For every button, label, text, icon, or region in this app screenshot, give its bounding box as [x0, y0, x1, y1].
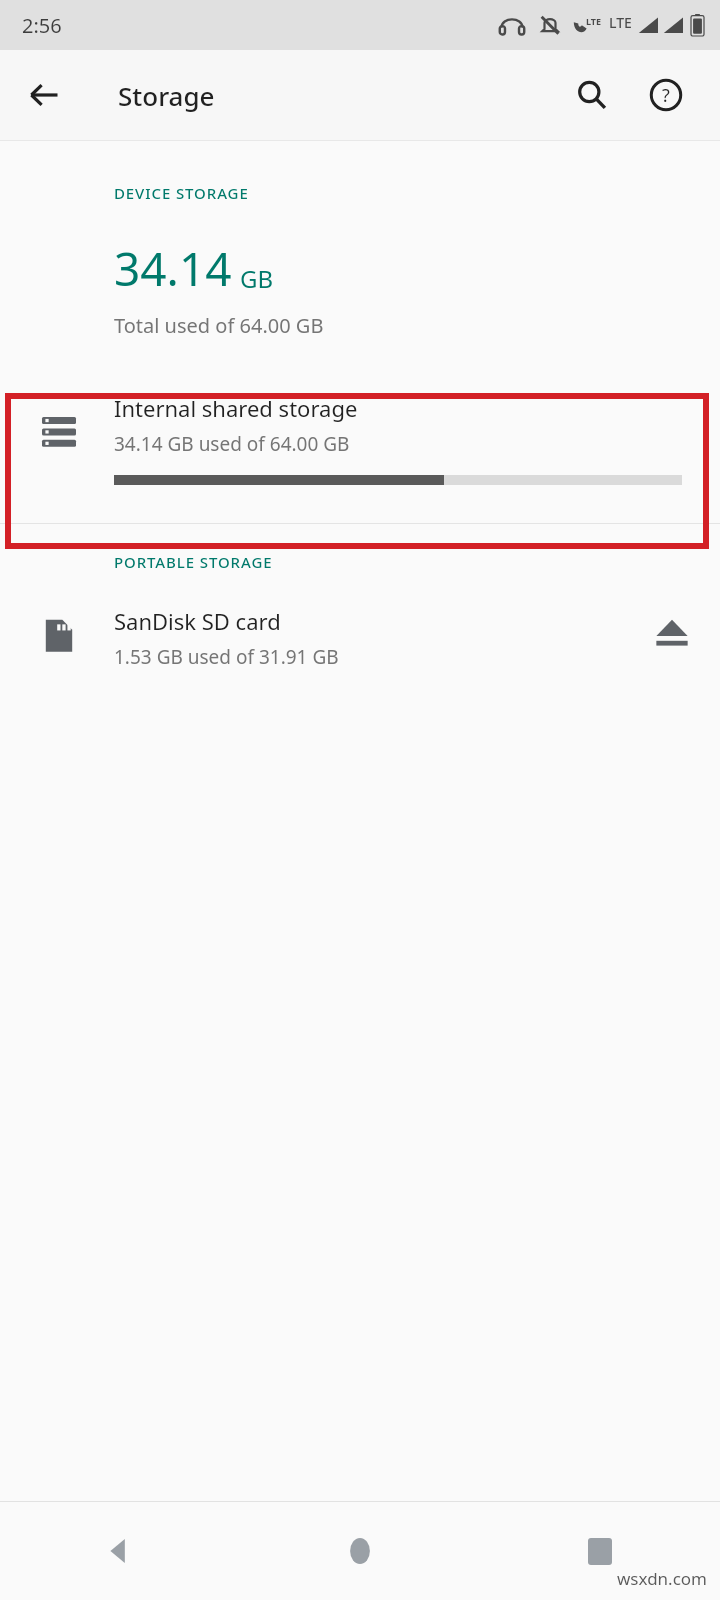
staticText: Internal shared storage [114, 393, 358, 423]
button[interactable]: Help [638, 67, 694, 123]
staticText: 34.14 GB used of 64.00 GB [114, 431, 350, 457]
staticText: GB [240, 262, 274, 295]
button[interactable]: Internal shared storage [0, 379, 720, 513]
staticText: SanDisk SD card [114, 606, 281, 636]
button[interactable]: Back [0, 1502, 240, 1600]
staticText: 2:56 [22, 12, 62, 39]
button[interactable]: Back [14, 65, 74, 125]
button[interactable]: Home [240, 1502, 480, 1600]
button[interactable]: SanDisk SD card [0, 606, 720, 702]
staticText: DEVICE STORAGE [114, 183, 249, 203]
button[interactable]: Recent apps [480, 1502, 720, 1600]
button[interactable]: Eject SD card [624, 606, 720, 702]
button[interactable]: Search [564, 67, 620, 123]
staticText: LTE [609, 13, 632, 32]
staticText: Storage [118, 78, 215, 113]
staticText: 1.53 GB used of 31.91 GB [114, 644, 339, 670]
staticText: Total used of 64.00 GB [114, 312, 324, 339]
staticText: LTE [586, 15, 602, 27]
staticText: PORTABLE STORAGE [114, 552, 273, 572]
staticText: wsxdn.com [617, 1567, 708, 1590]
staticText: ? [662, 83, 670, 108]
staticText: 34.14 [114, 237, 232, 300]
